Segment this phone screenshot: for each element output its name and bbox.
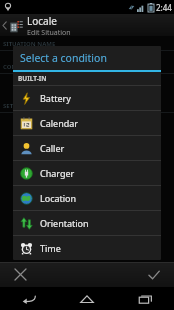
staticText: Charger [40, 167, 75, 179]
button[interactable]: Time [13, 236, 161, 260]
button[interactable]: Recent apps [116, 287, 174, 310]
button[interactable]: Locale [0, 14, 174, 36]
staticText: 2:44 [156, 2, 172, 13]
button[interactable]: Caller [13, 136, 161, 160]
staticText: Calendar [40, 117, 78, 129]
button[interactable]: Back [0, 287, 58, 310]
button[interactable]: Charger [13, 161, 161, 185]
staticText: CONDITIONS [3, 63, 42, 71]
button[interactable]: Battery [13, 86, 161, 110]
button[interactable]: Cancel [0, 262, 40, 287]
staticText: SETTINGS [3, 102, 32, 110]
button[interactable]: Location [13, 186, 161, 210]
staticText: Location [40, 192, 77, 204]
staticText: Locale [27, 14, 57, 28]
staticText: Edit Situation [27, 28, 71, 36]
staticText: Orientation [40, 217, 89, 229]
staticText: Time [40, 242, 61, 254]
button[interactable]: Done [134, 262, 174, 287]
staticText: Select a condition [20, 51, 107, 65]
button[interactable]: Home [58, 287, 116, 310]
button[interactable]: Orientation [13, 211, 161, 235]
staticText: SITUATION NAME [3, 40, 56, 48]
staticText: BUILT-IN [18, 74, 47, 83]
staticText: Battery [40, 92, 71, 104]
button[interactable]: Calendar [13, 111, 161, 135]
staticText: Caller [40, 142, 65, 154]
